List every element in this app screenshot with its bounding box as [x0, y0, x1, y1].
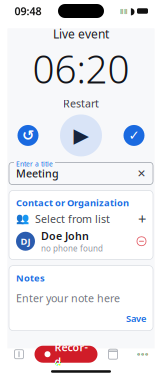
staticText: Meeting — [16, 166, 59, 181]
staticText: Save — [126, 312, 146, 325]
button[interactable]: More — [128, 341, 158, 367]
button[interactable]: Library — [4, 341, 34, 367]
staticText: 06:20 — [32, 43, 129, 94]
staticText: Restart — [63, 96, 99, 110]
staticText: 09:48 — [14, 4, 41, 18]
staticText: ◗ — [130, 6, 135, 16]
staticText: ▮▮ — [120, 7, 128, 15]
staticText: DJ — [20, 235, 30, 247]
button[interactable]: 👥 — [9, 209, 153, 229]
staticText: Live event — [53, 26, 109, 42]
staticText: ✕ — [137, 167, 146, 179]
button[interactable]: Meeting — [9, 162, 153, 184]
staticText: no phone found — [41, 243, 103, 254]
staticText: Record — [54, 340, 87, 368]
staticText: Enter your note here — [16, 291, 120, 305]
staticText: Enter a title — [16, 159, 53, 168]
staticText: Contact or Organization — [16, 196, 129, 209]
button[interactable]: Play — [58, 112, 104, 158]
staticText: + — [138, 209, 146, 229]
button[interactable]: Calendar — [98, 341, 128, 367]
staticText: ▶ — [73, 124, 88, 147]
button[interactable]: Save — [119, 309, 153, 328]
button[interactable]: Reset — [8, 115, 48, 155]
button[interactable]: Confirm — [114, 115, 154, 155]
staticText: Notes — [16, 272, 45, 284]
staticText: Select from list — [35, 212, 110, 226]
button[interactable]: Record — [34, 346, 97, 363]
staticText: ••• — [137, 348, 149, 360]
staticText: Doe John — [41, 229, 89, 243]
button[interactable]: DJ — [9, 229, 153, 260]
staticText: 👥 — [16, 213, 29, 225]
staticText: ↺ — [22, 127, 34, 144]
staticText: ✓ — [128, 128, 139, 143]
